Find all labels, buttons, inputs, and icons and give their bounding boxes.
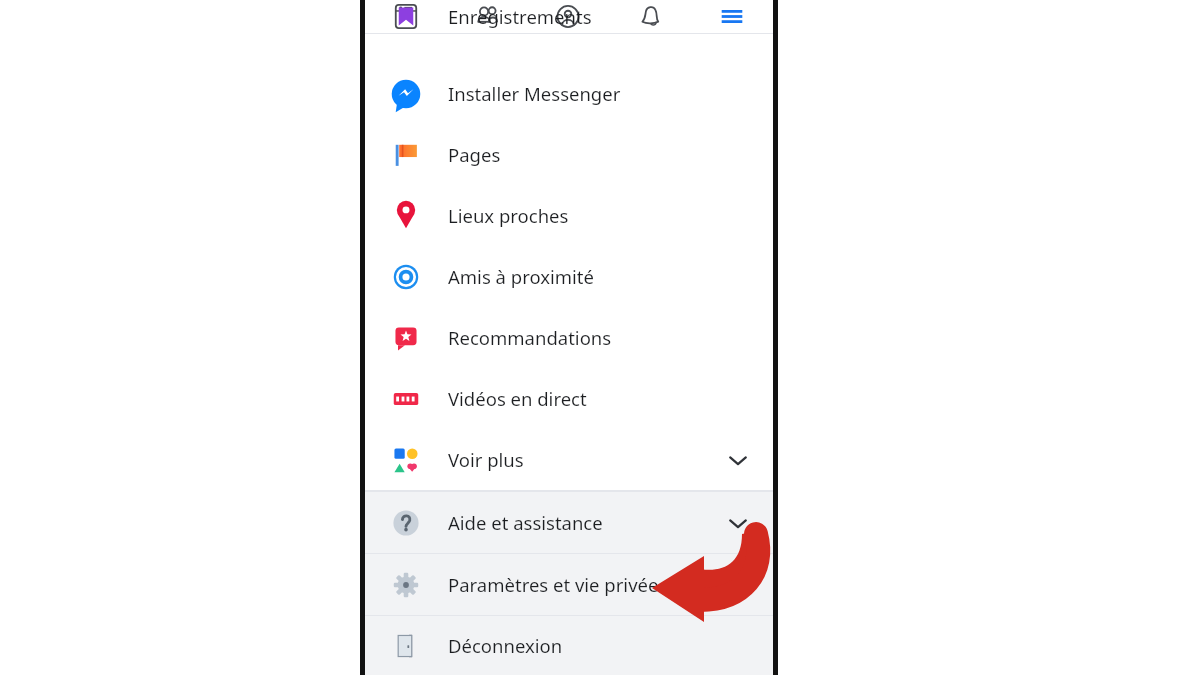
staticText: Vidéos en direct	[448, 386, 587, 411]
button[interactable]: Voir plus	[365, 429, 773, 490]
button[interactable]: Lieux proches	[365, 185, 773, 246]
staticText: Enregistrements	[448, 4, 592, 29]
button[interactable]: Notifications	[609, 0, 691, 33]
staticText: Voir plus	[448, 447, 524, 472]
button[interactable]: Vidéos en direct	[365, 368, 773, 429]
button[interactable]: Aide et assistance	[365, 492, 773, 553]
staticText: Déconnexion	[448, 633, 563, 658]
button[interactable]: Déconnexion	[365, 616, 773, 675]
button[interactable]: Amis à proximité	[365, 246, 773, 307]
button[interactable]: Menu	[691, 0, 773, 33]
button[interactable]: Recommandations	[365, 307, 773, 368]
staticText: Aide et assistance	[448, 510, 603, 535]
button[interactable]: Paramètres et vie privée	[365, 554, 773, 615]
button[interactable]: News Feed	[365, 0, 446, 33]
staticText: Lieux proches	[448, 203, 569, 228]
staticText: Paramètres et vie privée	[448, 572, 659, 597]
staticText: Pages	[448, 142, 501, 167]
button[interactable]: Pages	[365, 124, 773, 185]
button[interactable]: Installer Messenger	[365, 63, 773, 124]
staticText: Recommandations	[448, 325, 612, 350]
staticText: Installer Messenger	[448, 81, 621, 106]
button[interactable]: Profile	[527, 0, 609, 33]
button[interactable]: Friends	[446, 0, 527, 33]
staticText: Amis à proximité	[448, 264, 594, 289]
